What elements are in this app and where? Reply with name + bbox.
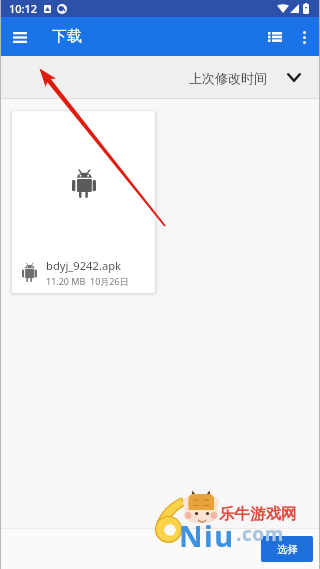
staticText: 11.20 MB 10月26日 [46,275,129,287]
button[interactable]: Open navigation drawer [4,21,36,53]
staticText: 10:12 [9,1,38,16]
button[interactable]: bdyj_9242.apk [12,111,155,293]
staticText: 乐牛游戏网 [219,504,297,524]
staticText: Niu [179,516,235,555]
button[interactable]: Change view [260,22,290,52]
staticText: bdyj_9242.apk [46,258,122,273]
button[interactable]: More options [290,23,318,51]
staticText: .com [236,521,284,547]
button[interactable]: 选择 [261,536,313,562]
staticText: 选择 [277,543,298,556]
staticText: 下载 [52,27,82,46]
button[interactable]: 上次修改时间 [184,56,306,99]
staticText: 上次修改时间 [189,70,267,86]
